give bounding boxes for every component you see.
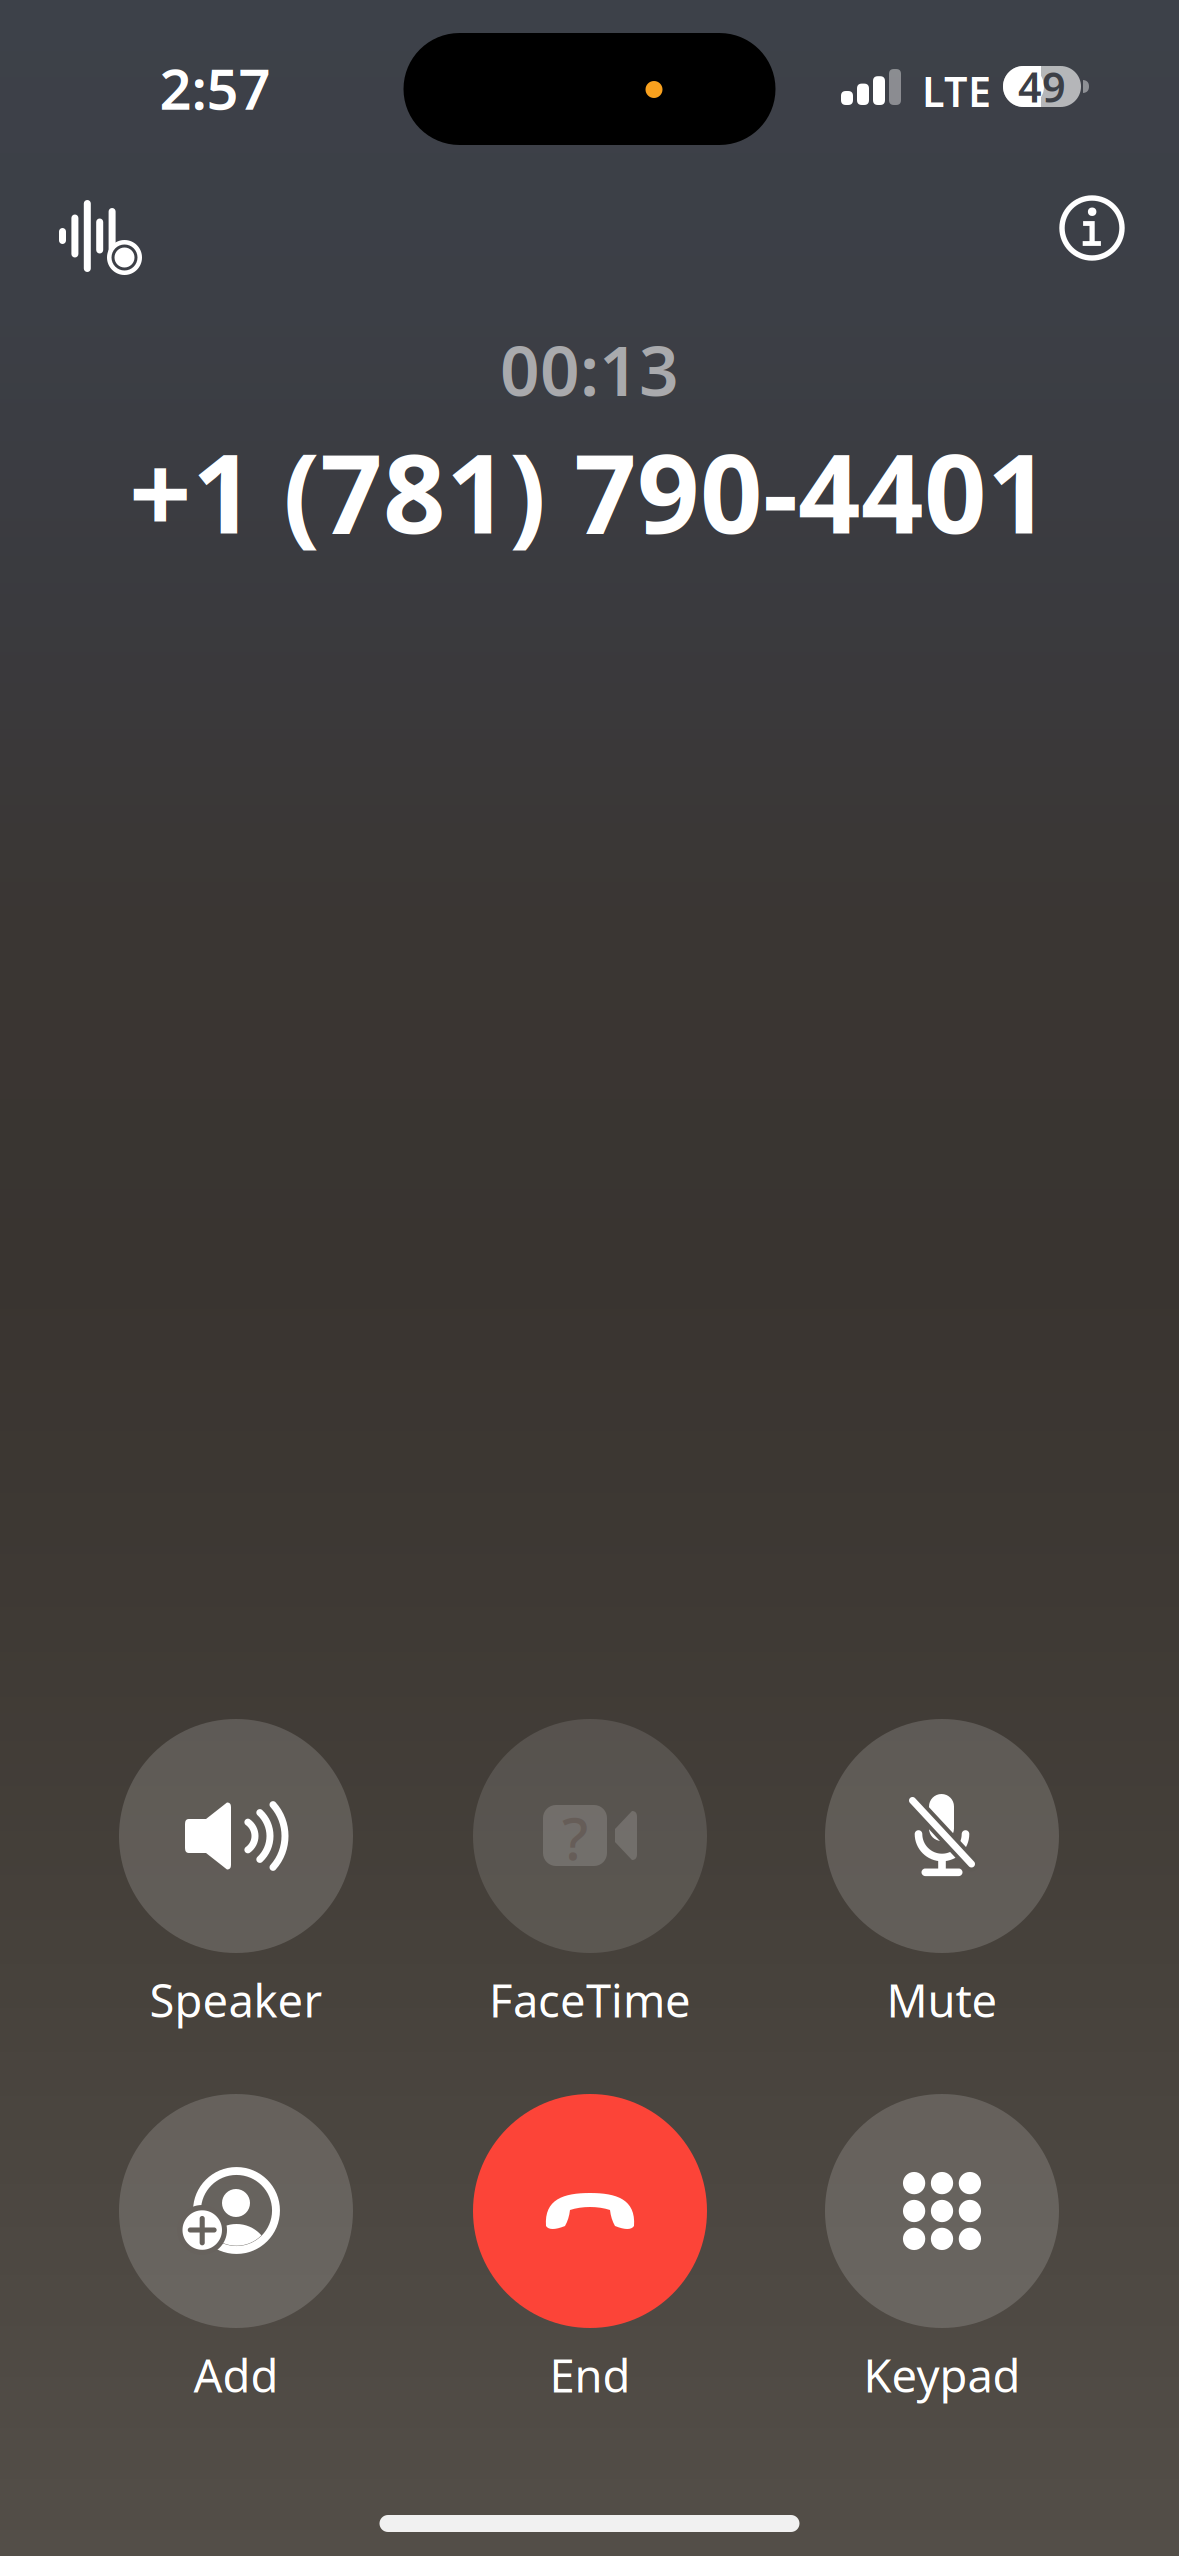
button[interactable]: Mute	[792, 1719, 1092, 2026]
button[interactable]: Add	[86, 2094, 386, 2401]
button[interactable]: ?	[440, 1719, 740, 2026]
staticText: ?	[562, 1798, 588, 1876]
staticText: 2:57	[159, 51, 270, 125]
staticText: FaceTime	[489, 1970, 691, 2030]
staticText: Speaker	[149, 1970, 322, 2030]
button[interactable]: Speaker	[86, 1719, 386, 2026]
staticText: Mute	[886, 1970, 997, 2030]
staticText: End	[549, 2345, 630, 2405]
staticText: Add	[193, 2345, 278, 2405]
button[interactable]: Record call	[35, 172, 167, 304]
staticText: Keypad	[863, 2345, 1020, 2405]
button[interactable]: Call info	[1026, 162, 1158, 294]
button[interactable]: End	[440, 2094, 740, 2401]
staticText: +1 (781) 790-4401	[129, 418, 1050, 564]
staticText: 49	[1018, 59, 1066, 114]
button[interactable]: Keypad	[792, 2094, 1092, 2401]
staticText: 00:13	[500, 323, 679, 415]
staticText: LTE	[922, 64, 991, 118]
